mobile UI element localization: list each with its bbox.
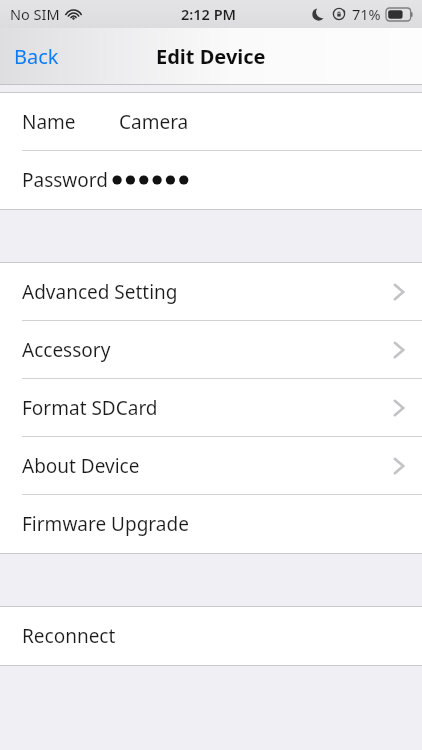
staticText: Name <box>22 109 76 135</box>
button[interactable]: Name <box>0 93 422 151</box>
staticText: About Device <box>22 453 394 479</box>
staticText: Accessory <box>22 337 394 363</box>
button[interactable]: About Device <box>0 437 422 495</box>
staticText: Reconnect <box>22 623 404 649</box>
button[interactable]: Back <box>0 37 73 76</box>
button[interactable]: Accessory <box>0 321 422 379</box>
staticText: Advanced Setting <box>22 279 394 305</box>
staticText: 71% <box>352 4 381 24</box>
staticText: Format SDCard <box>22 395 394 421</box>
staticText: Password <box>22 167 108 193</box>
button[interactable]: Reconnect <box>0 607 422 665</box>
staticText: Firmware Upgrade <box>22 511 404 537</box>
staticText: 2:12 PM <box>181 4 237 24</box>
staticText: No SIM <box>10 4 60 24</box>
button[interactable]: Password <box>0 151 422 209</box>
staticText: Edit Device <box>156 43 266 70</box>
button[interactable]: Firmware Upgrade <box>0 495 422 553</box>
staticText: Back <box>14 43 59 70</box>
staticText: Camera <box>119 109 189 135</box>
button[interactable]: Format SDCard <box>0 379 422 437</box>
button[interactable]: Advanced Setting <box>0 263 422 321</box>
